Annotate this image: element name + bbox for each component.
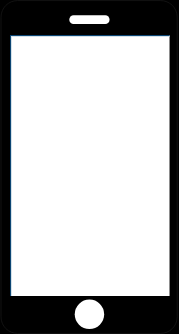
button[interactable]: Smartphone [0,0,179,334]
